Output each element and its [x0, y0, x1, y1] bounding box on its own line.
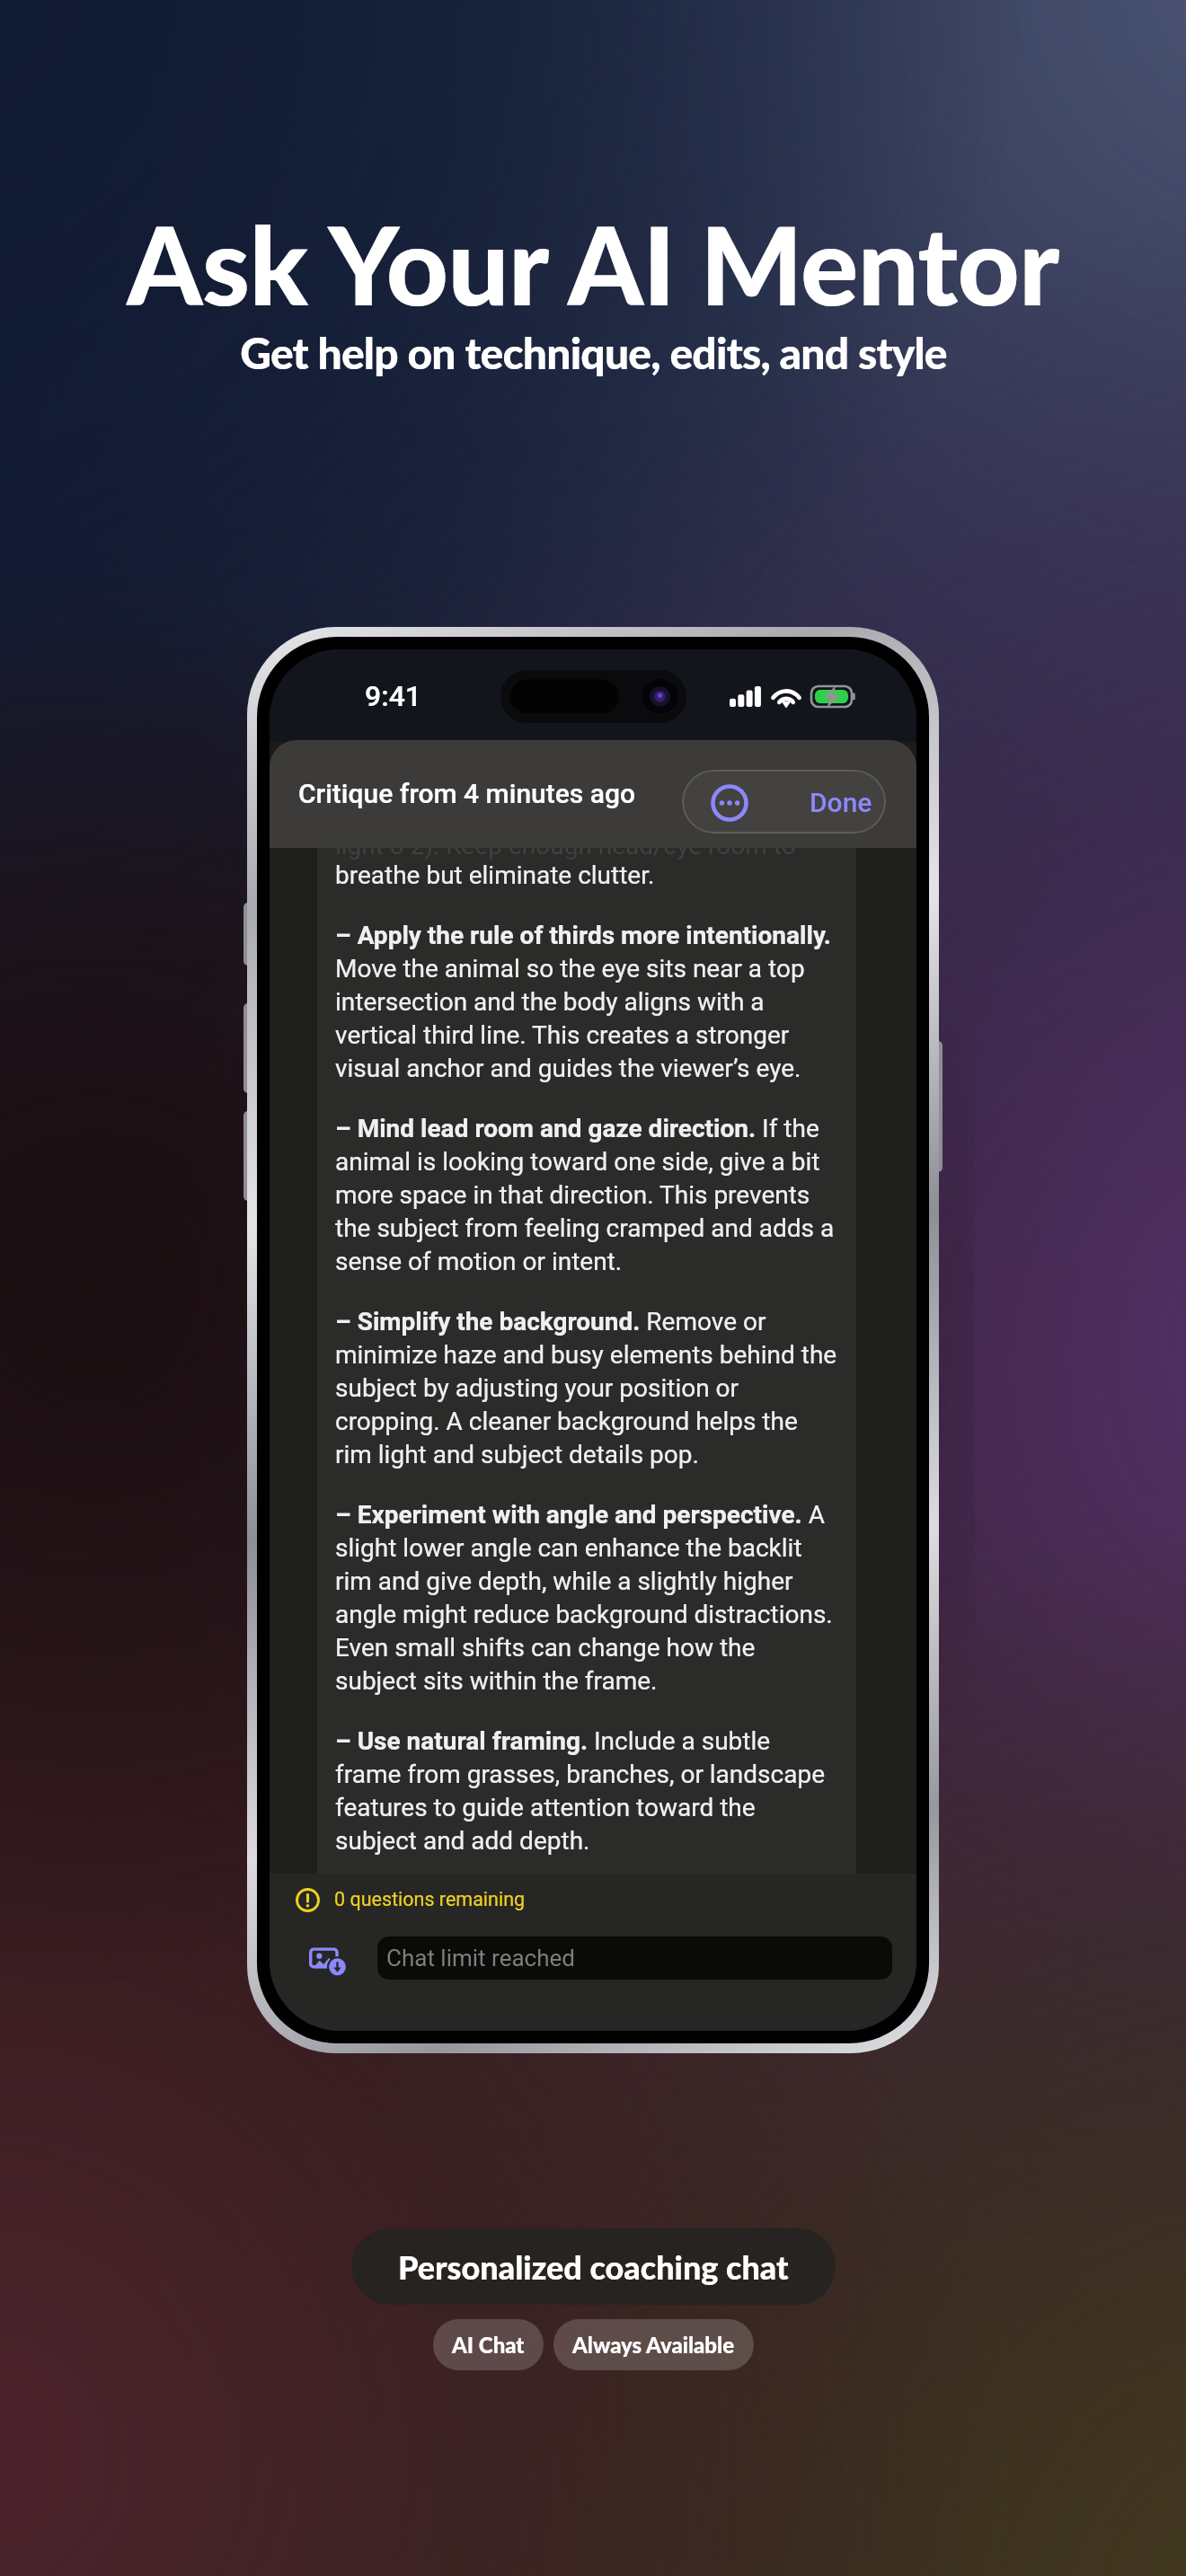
- staticText: Always Available: [572, 2332, 735, 2358]
- button[interactable]: More options: [682, 770, 781, 834]
- button[interactable]: Done: [781, 770, 886, 834]
- staticText: light 8 2). Keep enough head/eye room to: [335, 848, 796, 860]
- staticText: breathe but eliminate clutter.: [335, 860, 655, 890]
- button[interactable]: AI Chat: [433, 2319, 544, 2370]
- staticText: 0 questions remaining: [334, 1888, 526, 1910]
- staticText: – Simplify the background. Remove or min…: [335, 1307, 840, 1469]
- button[interactable]: Always Available: [553, 2319, 754, 2370]
- staticText: – Experiment with angle and perspective.…: [335, 1500, 840, 1696]
- staticText: Chat limit reached: [386, 1945, 575, 1972]
- button[interactable]: Chat limit reached: [377, 1936, 892, 1980]
- staticText: 9:41: [365, 679, 422, 713]
- staticText: – Mind lead room and gaze direction. If …: [335, 1114, 840, 1276]
- button[interactable]: Add image: [309, 1940, 347, 1978]
- staticText: Done: [810, 787, 872, 818]
- staticText: – Use natural framing. Include a subtle …: [335, 1726, 840, 1856]
- staticText: Personalized coaching chat: [398, 2247, 789, 2286]
- staticText: Get help on technique, edits, and style: [240, 327, 947, 379]
- staticText: AI Chat: [452, 2332, 525, 2358]
- staticText: Critique from 4 minutes ago: [298, 778, 636, 809]
- staticText: – Apply the rule of thirds more intentio…: [335, 921, 840, 1083]
- staticText: Ask Your AI Mentor: [127, 199, 1059, 329]
- button[interactable]: Personalized coaching chat: [351, 2228, 836, 2305]
